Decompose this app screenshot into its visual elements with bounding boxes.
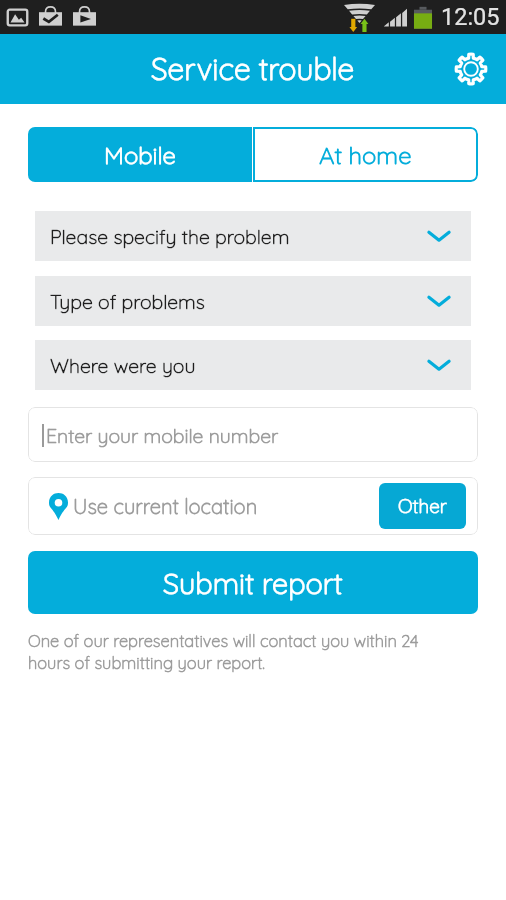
button[interactable]: Settings xyxy=(448,46,494,92)
staticText: 12:05 xyxy=(441,3,500,31)
button[interactable]: Mobile xyxy=(28,127,252,182)
button[interactable]: Submit report xyxy=(28,551,478,614)
staticText: Type of problems xyxy=(50,289,205,313)
button[interactable]: Please specify the problem xyxy=(35,211,471,261)
button[interactable]: Use current location xyxy=(49,477,379,535)
staticText: Mobile xyxy=(104,140,176,170)
staticText: Enter your mobile number xyxy=(46,423,279,447)
staticText: At home xyxy=(319,140,412,170)
button[interactable]: Type of problems xyxy=(35,276,471,326)
staticText: Where were you xyxy=(50,353,196,377)
staticText: Other xyxy=(398,494,447,518)
staticText: One of our representatives will contact … xyxy=(28,630,446,674)
staticText: Please specify the problem xyxy=(50,224,290,248)
button[interactable]: Where were you xyxy=(35,340,471,390)
staticText: Service trouble xyxy=(151,50,355,88)
button[interactable]: At home xyxy=(253,127,478,182)
button[interactable]: Enter your mobile number xyxy=(28,407,478,462)
staticText: Use current location xyxy=(73,494,258,519)
button[interactable]: Other xyxy=(379,483,466,529)
staticText: Submit report xyxy=(163,565,343,601)
